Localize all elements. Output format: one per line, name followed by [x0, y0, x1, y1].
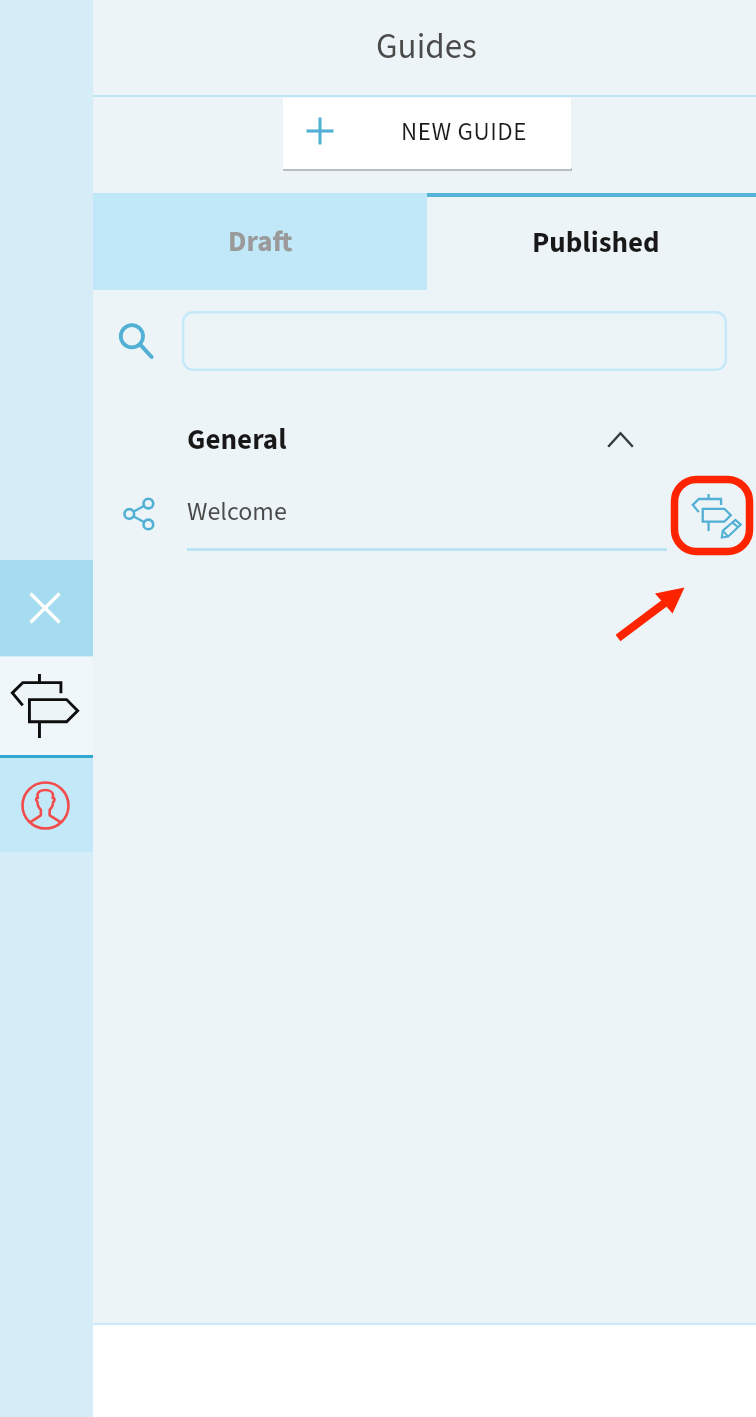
- button[interactable]: Published: [427, 192, 756, 292]
- button[interactable]: Collapse section: [597, 414, 644, 460]
- staticText: Welcome: [187, 493, 287, 530]
- button[interactable]: Edit guide: [671, 476, 754, 556]
- staticText: NEW GUIDE: [401, 114, 528, 150]
- staticText: Guides: [376, 22, 477, 72]
- button[interactable]: Draft: [93, 193, 427, 290]
- staticText: Published: [532, 222, 660, 263]
- button[interactable]: Search: [117, 321, 155, 359]
- button[interactable]: Profile: [0, 758, 93, 852]
- button[interactable]: [182, 311, 727, 371]
- button[interactable]: Guides: [0, 657, 93, 758]
- button[interactable]: [93, 484, 671, 550]
- staticText: General: [187, 419, 287, 460]
- button[interactable]: Close: [0, 560, 93, 656]
- staticText: Draft: [228, 221, 293, 262]
- button[interactable]: NEW GUIDE: [283, 98, 571, 169]
- button[interactable]: [93, 408, 756, 468]
